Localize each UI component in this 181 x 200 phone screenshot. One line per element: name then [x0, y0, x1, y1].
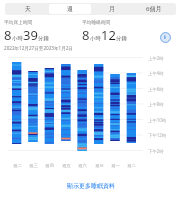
staticText: 6個月 — [146, 5, 162, 13]
staticText: 下午2時 — [148, 148, 164, 154]
staticText: 上午8時 — [148, 101, 164, 107]
button[interactable]: 週 — [49, 4, 91, 14]
staticText: 顯示更多睡眠資料 — [67, 182, 115, 190]
staticText: 分鐘 — [38, 35, 49, 42]
staticText: 週三 — [29, 163, 38, 169]
staticText: 週二 — [13, 163, 22, 169]
staticText: 平均睡眠時間 — [82, 19, 111, 25]
button[interactable]: 月 — [91, 4, 133, 14]
staticText: 上午6時 — [148, 86, 164, 92]
staticText: 月 — [109, 5, 115, 13]
staticText: 週一 — [111, 163, 120, 169]
staticText: 小時 — [12, 35, 23, 42]
staticText: 12 — [101, 26, 116, 44]
staticText: 小時 — [90, 35, 101, 42]
button[interactable]: 6個月 — [133, 4, 175, 14]
button[interactable]: 天 — [6, 4, 49, 14]
staticText: 8 — [82, 26, 90, 44]
staticText: 週二 — [127, 163, 136, 169]
staticText: 8 — [4, 26, 12, 44]
staticText: 週日 — [95, 163, 104, 169]
staticText: 上午4時 — [148, 70, 164, 76]
staticText: 週 — [67, 5, 73, 13]
staticText: 天 — [25, 5, 31, 13]
staticText: 下午12時 — [148, 132, 167, 138]
staticText: 上午2時 — [148, 55, 164, 61]
staticText: 週五 — [62, 163, 71, 169]
staticText: i — [164, 33, 166, 41]
staticText: 分鐘 — [116, 35, 127, 42]
staticText: 2022年12月27日至2023年1月2日 — [4, 45, 73, 51]
staticText: 週四 — [45, 163, 54, 169]
staticText: 39 — [23, 26, 38, 44]
button[interactable]: 顯示更多睡眠資料 — [0, 178, 181, 194]
staticText: 平均床上時間 — [4, 19, 33, 25]
staticText: 上午10時 — [148, 117, 167, 123]
staticText: 週六 — [78, 163, 87, 169]
button[interactable]: 資訊 — [159, 31, 171, 43]
